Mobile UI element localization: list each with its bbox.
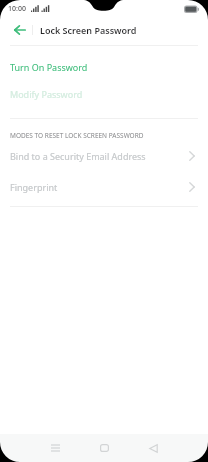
button[interactable]: [44, 436, 68, 460]
staticText: Turn On Password: [10, 61, 88, 73]
staticText: Modify Password: [10, 88, 83, 100]
staticText: Lock Screen Password: [40, 24, 137, 36]
staticText: 10:00: [8, 4, 26, 14]
button[interactable]: Bind to a Security Email Address: [0, 147, 208, 164]
button[interactable]: [7, 20, 33, 40]
button[interactable]: Fingerprint: [0, 178, 208, 195]
button[interactable]: Turn On Password: [0, 58, 208, 75]
staticText: MODES TO RESET LOCK SCREEN PASSWORD: [10, 131, 144, 140]
button[interactable]: Modify Password: [0, 85, 208, 102]
staticText: Bind to a Security Email Address: [10, 150, 146, 162]
button[interactable]: [141, 436, 165, 460]
button[interactable]: [92, 436, 116, 460]
staticText: Fingerprint: [10, 181, 58, 193]
